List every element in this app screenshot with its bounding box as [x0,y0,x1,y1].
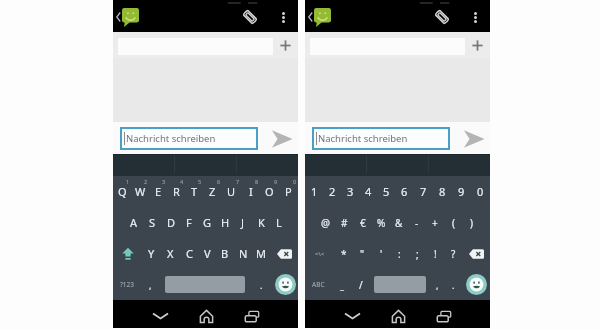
button[interactable]: 0 [471,176,490,207]
button[interactable]: ?123 [113,269,140,300]
button[interactable]: ; [408,238,426,269]
button[interactable]: 3 [341,176,359,207]
button[interactable]: # [335,207,354,238]
button[interactable]: Nachricht schreiben [312,127,450,150]
button[interactable]: , [430,269,444,300]
button[interactable]: H [216,207,234,238]
button[interactable]: * [334,238,353,269]
button[interactable]: 8 [241,176,260,207]
button[interactable]: ? [444,238,462,269]
button[interactable]: 4 [167,176,185,207]
button[interactable]: - [408,207,426,238]
button[interactable]: C [180,238,198,269]
button[interactable]: 5 [185,176,203,207]
button[interactable]: F [180,207,198,238]
button[interactable]: / [351,269,370,300]
button[interactable]: . [444,269,463,300]
button[interactable]: 6 [395,176,414,207]
button[interactable]: L [270,207,288,238]
staticText: W [135,184,146,199]
button[interactable]: , [140,269,160,300]
button[interactable]: More options [467,5,483,29]
staticText: 9 [274,178,278,185]
button[interactable]: 5 [377,176,395,207]
button[interactable]: Space [165,276,245,293]
button[interactable]: ! [426,238,444,269]
button[interactable]: 4 [359,176,377,207]
button[interactable]: Send [265,127,298,150]
button[interactable]: Navigate up [306,4,346,30]
staticText: # [341,216,348,230]
button[interactable]: % [372,207,390,238]
button[interactable]: & [390,207,408,238]
button[interactable]: Home [375,302,421,330]
button[interactable]: X [161,238,180,269]
button[interactable]: S [143,207,162,238]
button[interactable]: 9 [260,176,279,207]
button[interactable]: 7 [414,176,433,207]
staticText: + [432,216,438,230]
button[interactable]: K [252,207,270,238]
button[interactable]: V [198,238,216,269]
button[interactable]: Add recipient [465,32,490,58]
button[interactable]: . [250,269,272,300]
button[interactable]: " [353,238,372,269]
button[interactable]: B [216,238,234,269]
button[interactable]: 7 [222,176,241,207]
button[interactable]: Add recipient [273,32,298,58]
button[interactable]: 2 [323,176,341,207]
staticText: V [204,246,211,261]
button[interactable]: € [354,207,372,238]
button[interactable]: 1 [113,176,131,207]
button[interactable]: More options [275,5,291,29]
button[interactable]: M [252,238,270,269]
button[interactable]: Backspace [270,238,298,269]
button[interactable]: 9 [452,176,471,207]
staticText: @ [321,216,330,230]
staticText: _ [340,279,344,291]
button[interactable]: Y [142,238,161,269]
staticText: Z [209,184,216,199]
button[interactable]: =\< [305,238,334,269]
button[interactable]: ' [372,238,390,269]
button[interactable]: Navigate up [114,4,154,30]
button[interactable]: Space [374,276,426,293]
button[interactable]: ( [444,207,462,238]
button[interactable]: + [426,207,444,238]
button[interactable]: Emoji [463,269,490,300]
button[interactable]: 1 [305,176,323,207]
button[interactable]: Shift [113,238,142,269]
button[interactable]: 6 [203,176,222,207]
button[interactable]: @ [316,207,335,238]
button[interactable]: Hide keyboard [329,302,375,330]
button[interactable]: ABC [305,269,332,300]
staticText: L [276,215,282,230]
button[interactable]: 3 [149,176,167,207]
button[interactable]: J [234,207,252,238]
staticText: I [249,184,253,199]
button[interactable]: Nachricht schreiben [120,127,258,150]
button[interactable]: Emoji [272,269,298,300]
button[interactable]: Hide keyboard [137,302,183,330]
button[interactable]: : [390,238,408,269]
button[interactable]: _ [332,269,351,300]
button[interactable]: Recent apps [421,302,467,330]
button[interactable]: Backspace [462,238,490,269]
staticText: 0 [477,184,484,199]
button[interactable]: D [162,207,180,238]
button[interactable]: 2 [131,176,149,207]
staticText: 1 [311,184,318,199]
button[interactable]: N [234,238,252,269]
button[interactable]: Attach [430,5,454,29]
button[interactable]: A [124,207,143,238]
button[interactable]: Send [457,127,490,150]
button[interactable]: 8 [433,176,452,207]
button[interactable]: G [198,207,216,238]
button[interactable]: Recent apps [229,302,275,330]
button[interactable]: Home [183,302,229,330]
button[interactable]: Attach [238,5,262,29]
button[interactable]: 0 [279,176,298,207]
button[interactable]: ) [462,207,480,238]
